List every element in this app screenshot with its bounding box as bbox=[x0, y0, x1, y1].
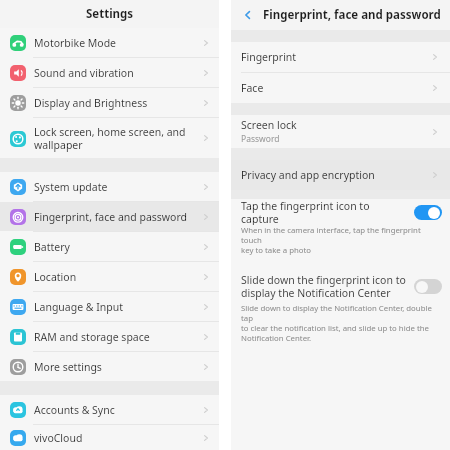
staticText: System update bbox=[34, 180, 108, 194]
staticText: Privacy and app encryption bbox=[241, 168, 375, 182]
staticText: Password bbox=[241, 133, 280, 145]
staticText: More settings bbox=[34, 360, 102, 374]
button[interactable]: vivoCloud bbox=[0, 425, 219, 450]
button[interactable]: Screen lock bbox=[231, 115, 450, 148]
staticText: Motorbike Mode bbox=[34, 36, 117, 50]
staticText: Fingerprint bbox=[241, 50, 297, 64]
staticText: Fingerprint, face and password bbox=[34, 210, 188, 224]
button[interactable]: Language & Input bbox=[0, 292, 219, 321]
button[interactable]: Accounts & Sync bbox=[0, 395, 219, 424]
staticText: Slide down the fingerprint icon to displ… bbox=[241, 273, 406, 300]
button[interactable]: Sound and vibration bbox=[0, 58, 219, 87]
button[interactable]: Toggle on bbox=[414, 205, 442, 220]
staticText: When in the camera interface, tap the fi… bbox=[241, 225, 440, 255]
button[interactable]: Location bbox=[0, 262, 219, 291]
button[interactable]: More settings bbox=[0, 352, 219, 381]
staticText: Language & Input bbox=[34, 300, 124, 314]
staticText: Face bbox=[241, 81, 264, 95]
staticText: vivoCloud bbox=[34, 431, 83, 445]
staticText: Lock screen, home screen, and wallpaper bbox=[34, 125, 186, 152]
staticText: Battery bbox=[34, 240, 70, 254]
button[interactable]: Back bbox=[239, 6, 257, 24]
button[interactable]: Battery bbox=[0, 232, 219, 261]
staticText: Screen lock bbox=[241, 118, 297, 132]
staticText: RAM and storage space bbox=[34, 330, 150, 344]
button[interactable]: Display and Brightness bbox=[0, 88, 219, 117]
staticText: Tap the fingerprint icon to capture bbox=[241, 199, 408, 225]
button[interactable]: Fingerprint, face and password bbox=[0, 202, 219, 231]
staticText: Fingerprint, face and password bbox=[263, 7, 441, 23]
button[interactable]: Fingerprint bbox=[231, 42, 450, 72]
button[interactable]: RAM and storage space bbox=[0, 322, 219, 351]
button[interactable]: Lock screen, home screen, and wallpaper bbox=[0, 118, 219, 158]
staticText: Sound and vibration bbox=[34, 66, 134, 80]
staticText: Location bbox=[34, 270, 77, 284]
staticText: Slide down to display the Notification C… bbox=[241, 303, 440, 343]
staticText: Settings bbox=[86, 6, 134, 22]
button[interactable]: Toggle off bbox=[414, 279, 442, 294]
staticText: Accounts & Sync bbox=[34, 403, 115, 417]
button[interactable]: System update bbox=[0, 172, 219, 201]
button[interactable]: Face bbox=[231, 73, 450, 103]
button[interactable]: Privacy and app encryption bbox=[231, 160, 450, 190]
button[interactable]: Motorbike Mode bbox=[0, 28, 219, 57]
staticText: Display and Brightness bbox=[34, 96, 148, 110]
button[interactable]: Slide down the fingerprint icon to displ… bbox=[231, 269, 450, 303]
button[interactable]: Tap the fingerprint icon to capture bbox=[231, 199, 450, 225]
